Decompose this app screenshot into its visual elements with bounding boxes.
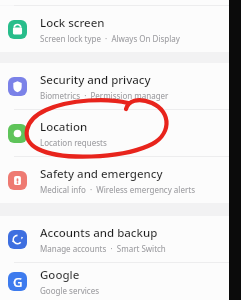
- staticText: Safety and emergency: [40, 166, 163, 182]
- staticText: G: [13, 273, 23, 291]
- staticText: Manage accounts · Smart Switch: [40, 243, 166, 254]
- staticText: Lock screen: [40, 15, 105, 31]
- staticText: Location: [40, 119, 88, 135]
- staticText: Google: [40, 267, 80, 283]
- button[interactable]: Accounts and backup: [0, 216, 229, 262]
- button[interactable]: Location: [0, 110, 229, 156]
- staticText: Location requests: [40, 137, 107, 148]
- button[interactable]: Safety and emergency: [0, 157, 229, 203]
- button[interactable]: G: [0, 263, 229, 300]
- staticText: Accounts and backup: [40, 225, 158, 241]
- staticText: Security and privacy: [40, 72, 151, 88]
- staticText: Screen lock type · Always On Display: [40, 33, 180, 44]
- button[interactable]: Security and privacy: [0, 63, 229, 109]
- staticText: Biometrics · Permission manager: [40, 90, 169, 101]
- staticText: Medical info · Wireless emergency alerts: [40, 184, 195, 195]
- button[interactable]: Lock screen: [0, 6, 229, 52]
- staticText: Google services: [40, 285, 100, 296]
